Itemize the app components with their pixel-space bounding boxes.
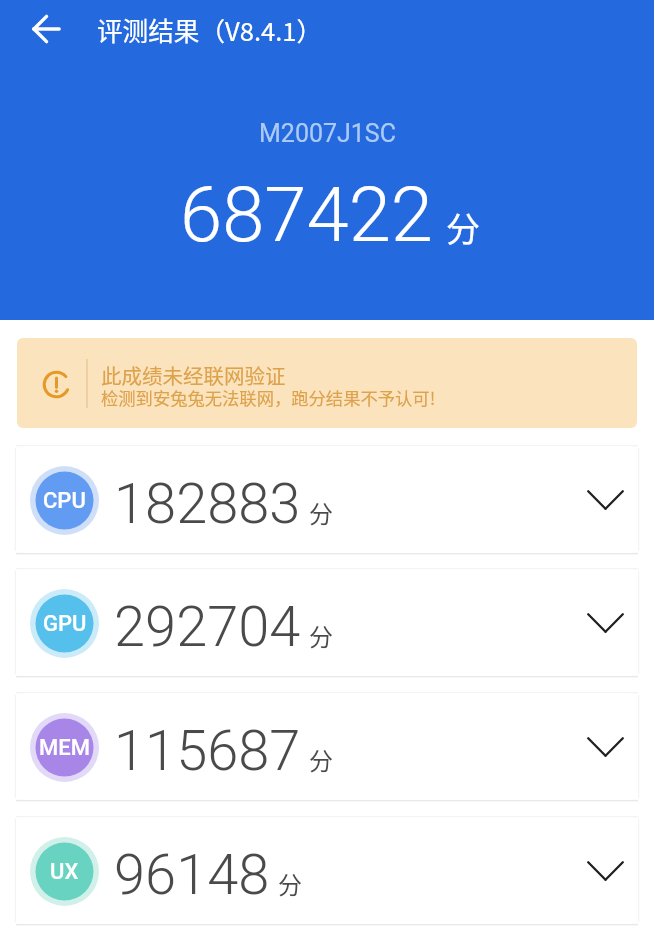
button[interactable]: Expand	[577, 843, 633, 899]
staticText: M2007J1SC	[259, 119, 396, 148]
button[interactable]: Expand	[577, 472, 633, 528]
button[interactable]: 此成绩未经联网验证	[17, 338, 637, 428]
button[interactable]: MEM	[17, 693, 637, 800]
staticText: 96148	[114, 842, 270, 908]
button[interactable]: CPU	[17, 446, 637, 553]
staticText: MEM	[39, 735, 90, 761]
staticText: 分	[309, 495, 333, 530]
button[interactable]: GPU	[17, 569, 637, 676]
staticText: 分	[309, 618, 333, 653]
button[interactable]: Expand	[577, 595, 633, 651]
button[interactable]: UX	[17, 817, 637, 924]
staticText: GPU	[43, 611, 87, 637]
staticText: 检测到安兔兔无法联网，跑分结果不予认可!	[101, 385, 436, 410]
staticText: 此成绩未经联网验证	[101, 360, 286, 390]
staticText: 182883	[114, 471, 301, 537]
staticText: 292704	[114, 594, 301, 660]
staticText: 687422	[180, 170, 433, 259]
staticText: 评测结果（V8.4.1）	[97, 11, 323, 48]
button[interactable]: Back	[22, 5, 70, 53]
button[interactable]: Expand	[577, 719, 633, 775]
staticText: 分	[309, 742, 333, 777]
staticText: CPU	[43, 488, 86, 514]
staticText: UX	[50, 859, 79, 885]
staticText: 分	[446, 203, 480, 252]
staticText: 115687	[114, 718, 301, 784]
staticText: 分	[278, 866, 302, 901]
